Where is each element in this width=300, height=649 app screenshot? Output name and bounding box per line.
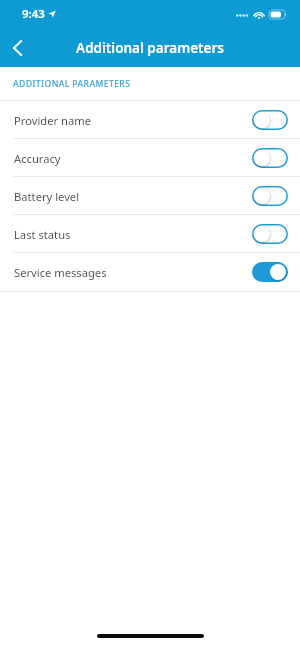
staticText: Service messages [14,265,107,280]
button[interactable]: On [252,262,288,282]
staticText: 9:43 [22,6,45,22]
button[interactable]: Provider name [0,101,300,139]
button[interactable]: Battery level [0,177,300,215]
staticText: Accuracy [14,151,61,166]
staticText: Additional parameters [0,39,300,57]
button[interactable]: Service messages [0,253,300,291]
staticText: Provider name [14,113,91,128]
staticText: Battery level [14,189,80,204]
button[interactable]: Accuracy [0,139,300,177]
button[interactable]: Off [252,186,288,206]
button[interactable]: Last status [0,215,300,253]
button[interactable]: Off [252,148,288,168]
button[interactable]: Back [0,31,34,65]
staticText: Last status [14,227,71,242]
button[interactable]: Off [252,224,288,244]
staticText: ADDITIONAL PARAMETERS [13,78,131,90]
button[interactable]: Off [252,110,288,130]
